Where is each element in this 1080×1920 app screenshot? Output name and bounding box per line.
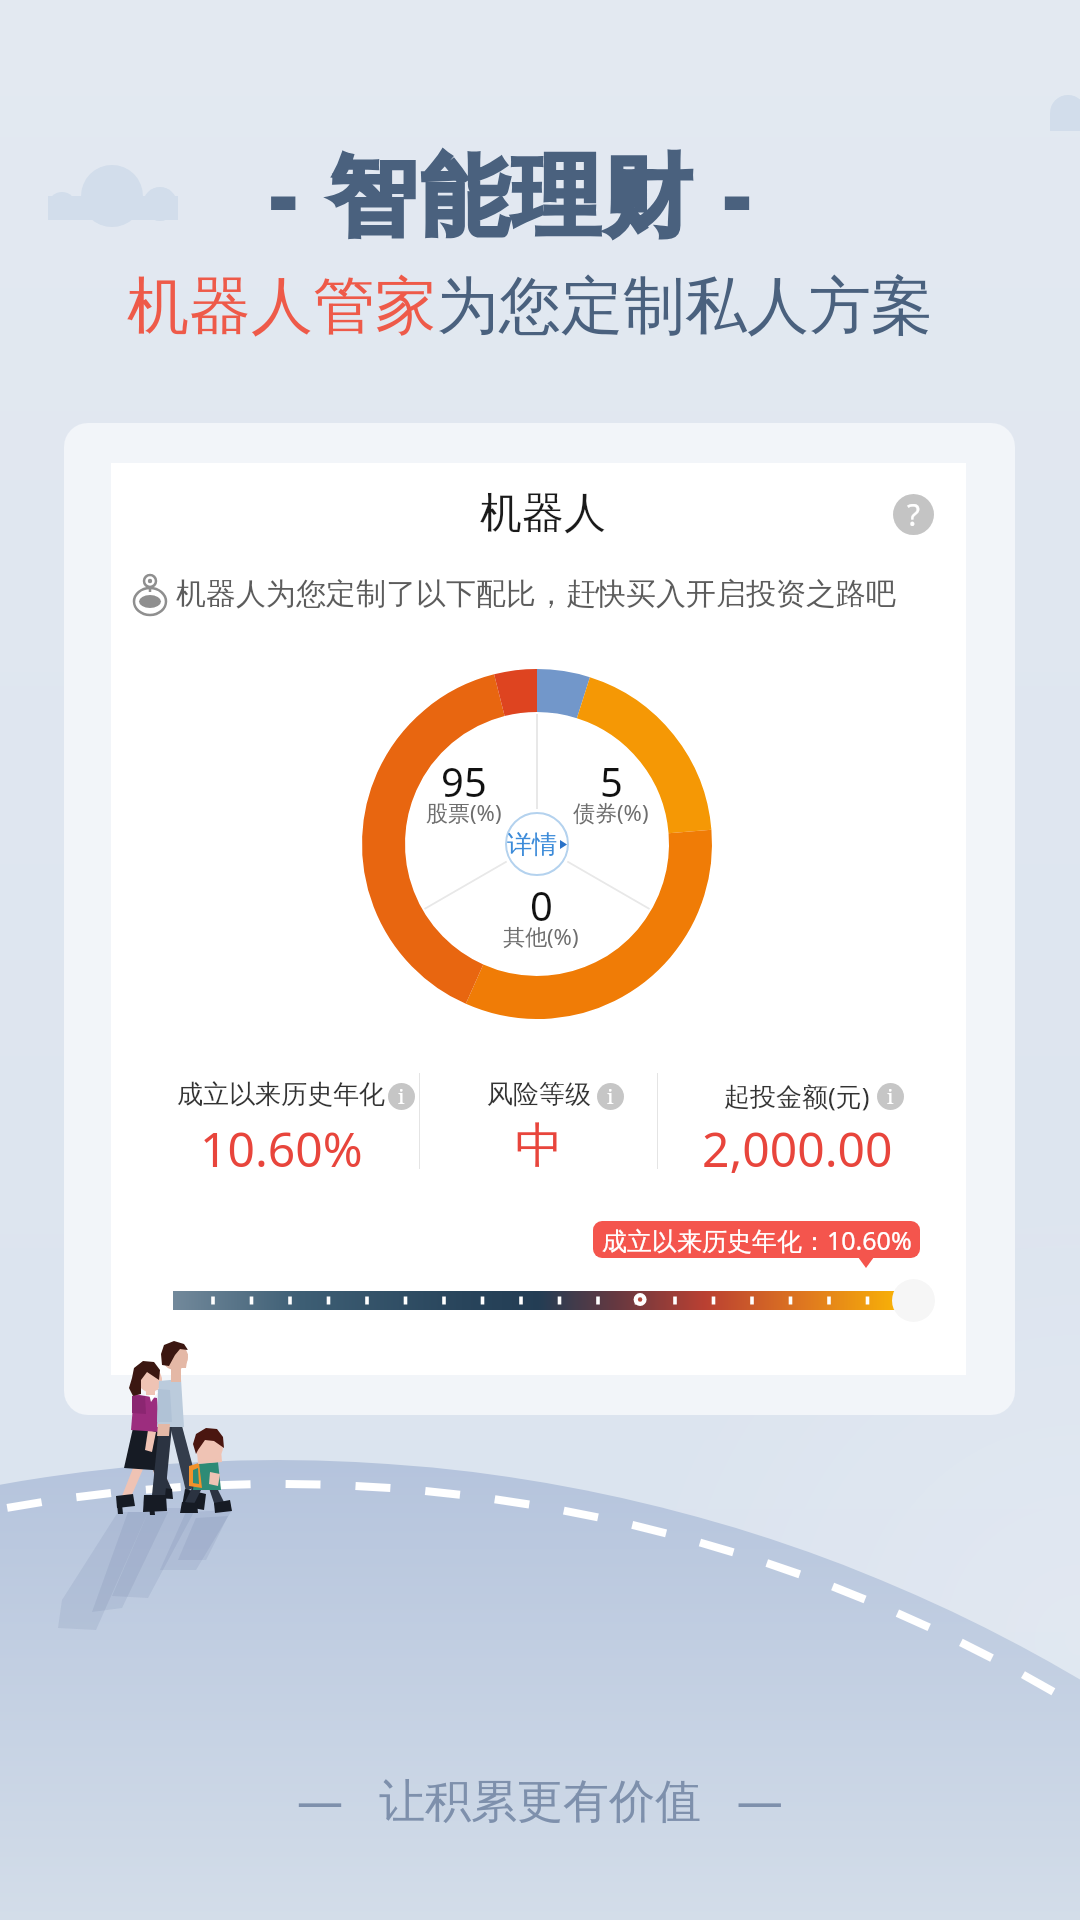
staticText: 详情 bbox=[507, 829, 557, 860]
staticText: 风险等级 bbox=[487, 1078, 591, 1111]
staticText: 机器人为您定制了以下配比，赶快买入开启投资之路吧 bbox=[176, 575, 896, 613]
staticText: 为您定制私人方案 bbox=[437, 267, 933, 345]
staticText: 5 bbox=[600, 754, 623, 808]
staticText: 0 bbox=[530, 878, 553, 932]
staticText: i bbox=[607, 1083, 614, 1110]
staticText: 成立以来历史年化：10.60% bbox=[602, 1223, 912, 1257]
staticText: 10.60% bbox=[200, 1116, 363, 1181]
button[interactable]: 详情 bbox=[506, 813, 568, 875]
staticText: 债券(%) bbox=[573, 797, 649, 827]
staticText: 中 bbox=[515, 1116, 563, 1176]
button[interactable]: 帮助 bbox=[893, 494, 934, 535]
staticText: ? bbox=[907, 494, 921, 535]
staticText: 机器人管家 bbox=[127, 267, 437, 345]
staticText: i bbox=[887, 1083, 894, 1110]
staticText: 机器人 bbox=[480, 487, 606, 540]
button[interactable]: 说明 bbox=[388, 1083, 415, 1110]
staticText: 其他(%) bbox=[503, 921, 579, 951]
button[interactable]: 说明 bbox=[877, 1083, 904, 1110]
staticText: i bbox=[398, 1083, 405, 1110]
staticText: 成立以来历史年化 bbox=[177, 1078, 385, 1111]
staticText: - 智能理财 - bbox=[269, 133, 755, 253]
staticText: 95 bbox=[441, 754, 487, 808]
staticText: 起投金额(元) bbox=[724, 1078, 870, 1114]
staticText: 股票(%) bbox=[426, 797, 502, 827]
staticText: — 让积累更有价值 — bbox=[297, 1768, 783, 1831]
staticText: 2,000.00 bbox=[702, 1116, 893, 1181]
button[interactable]: 说明 bbox=[597, 1083, 624, 1110]
